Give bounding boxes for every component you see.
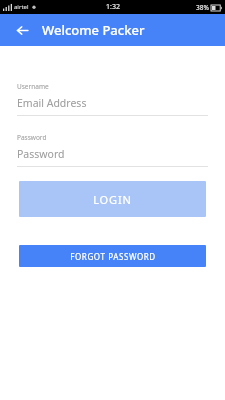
staticText: Password bbox=[17, 133, 47, 142]
staticText: FORGOT PASSWORD bbox=[70, 251, 156, 262]
staticText: 38% bbox=[196, 3, 209, 12]
button[interactable]: FORGOT PASSWORD bbox=[19, 245, 206, 267]
button[interactable]: Password bbox=[17, 133, 208, 167]
staticText: Welcome Packer bbox=[42, 21, 145, 39]
staticText: LOGIN bbox=[93, 192, 132, 207]
staticText: 1:32 bbox=[106, 2, 120, 12]
button[interactable]: Username bbox=[17, 82, 208, 116]
staticText: Email Address bbox=[17, 96, 87, 110]
button[interactable]: Back bbox=[11, 19, 33, 41]
staticText: airtel bbox=[14, 3, 29, 11]
button[interactable]: LOGIN bbox=[19, 181, 206, 217]
staticText: Username bbox=[17, 82, 49, 91]
staticText: Password bbox=[17, 147, 65, 161]
